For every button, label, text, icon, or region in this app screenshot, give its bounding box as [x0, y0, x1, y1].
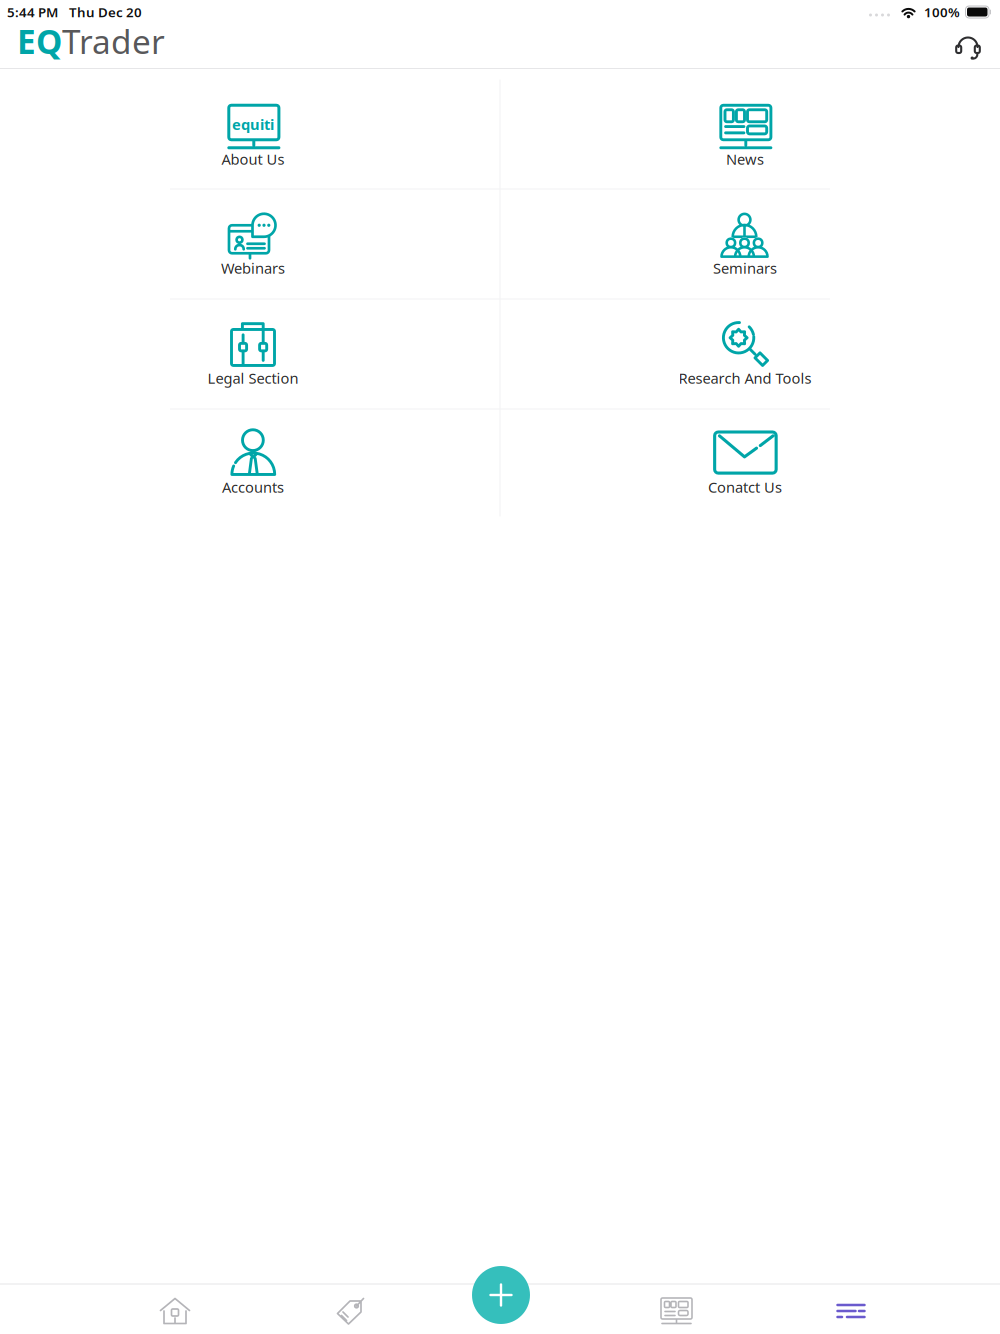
staticText: Webinars: [221, 258, 285, 278]
staticText: News: [726, 149, 764, 169]
button[interactable]: Webinars: [103, 192, 403, 300]
staticText: Accounts: [222, 477, 284, 497]
staticText: Seminars: [713, 258, 777, 278]
button[interactable]: equiti: [103, 83, 403, 191]
staticText: Thu Dec 20: [69, 3, 142, 21]
button[interactable]: News: [627, 1286, 727, 1334]
staticText: 5:44 PM: [7, 3, 58, 21]
button[interactable]: Home: [125, 1286, 225, 1334]
staticText: equiti: [232, 114, 274, 134]
button[interactable]: More: [801, 1286, 901, 1334]
staticText: Conatct Us: [708, 477, 782, 497]
button[interactable]: Legal Section: [103, 302, 403, 410]
button[interactable]: Research And Tools: [595, 302, 895, 410]
button[interactable]: Add: [472, 1266, 530, 1324]
staticText: Legal Section: [207, 368, 298, 388]
button[interactable]: Accounts: [103, 411, 403, 519]
staticText: EQ: [17, 19, 62, 63]
staticText: 100%: [924, 3, 960, 21]
button[interactable]: News: [595, 83, 895, 191]
button[interactable]: Conatct Us: [595, 411, 895, 519]
button[interactable]: Offers: [300, 1286, 400, 1334]
button[interactable]: Seminars: [595, 192, 895, 300]
staticText: About Us: [221, 149, 284, 169]
staticText: Trader: [62, 19, 165, 63]
staticText: Research And Tools: [678, 368, 811, 388]
button[interactable]: Support: [945, 23, 991, 69]
